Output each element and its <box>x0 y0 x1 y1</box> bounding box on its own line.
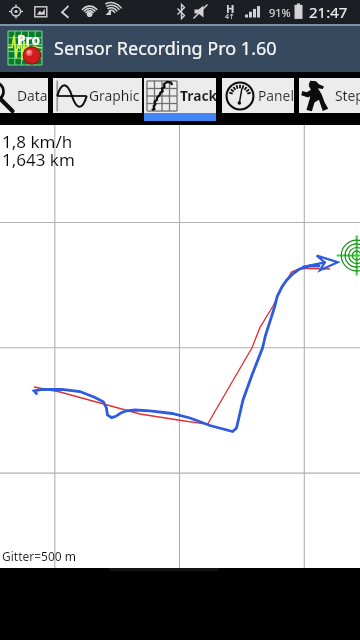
button[interactable]: Data <box>0 78 48 113</box>
staticText: 4↑ <box>225 12 235 22</box>
staticText: Panel <box>258 86 294 105</box>
staticText: 1,643 km <box>2 148 75 171</box>
staticText: H <box>226 1 235 16</box>
staticText: Data <box>17 86 48 105</box>
button[interactable]: Panel <box>222 78 294 113</box>
staticText: Step <box>335 86 360 105</box>
staticText: 91% <box>269 5 291 20</box>
staticText: 21:47 <box>309 2 348 22</box>
staticText: Gitter=500 m <box>2 548 77 564</box>
button[interactable]: Graphic <box>53 78 142 113</box>
staticText: Track <box>180 86 216 105</box>
staticText: Pro <box>17 30 41 49</box>
staticText: 1,8 km/h <box>2 130 73 153</box>
staticText: Graphic <box>89 86 140 105</box>
button[interactable]: Track <box>144 78 216 121</box>
button[interactable]: Step <box>299 78 360 113</box>
staticText: Sensor Recording Pro 1.60 <box>54 36 277 61</box>
